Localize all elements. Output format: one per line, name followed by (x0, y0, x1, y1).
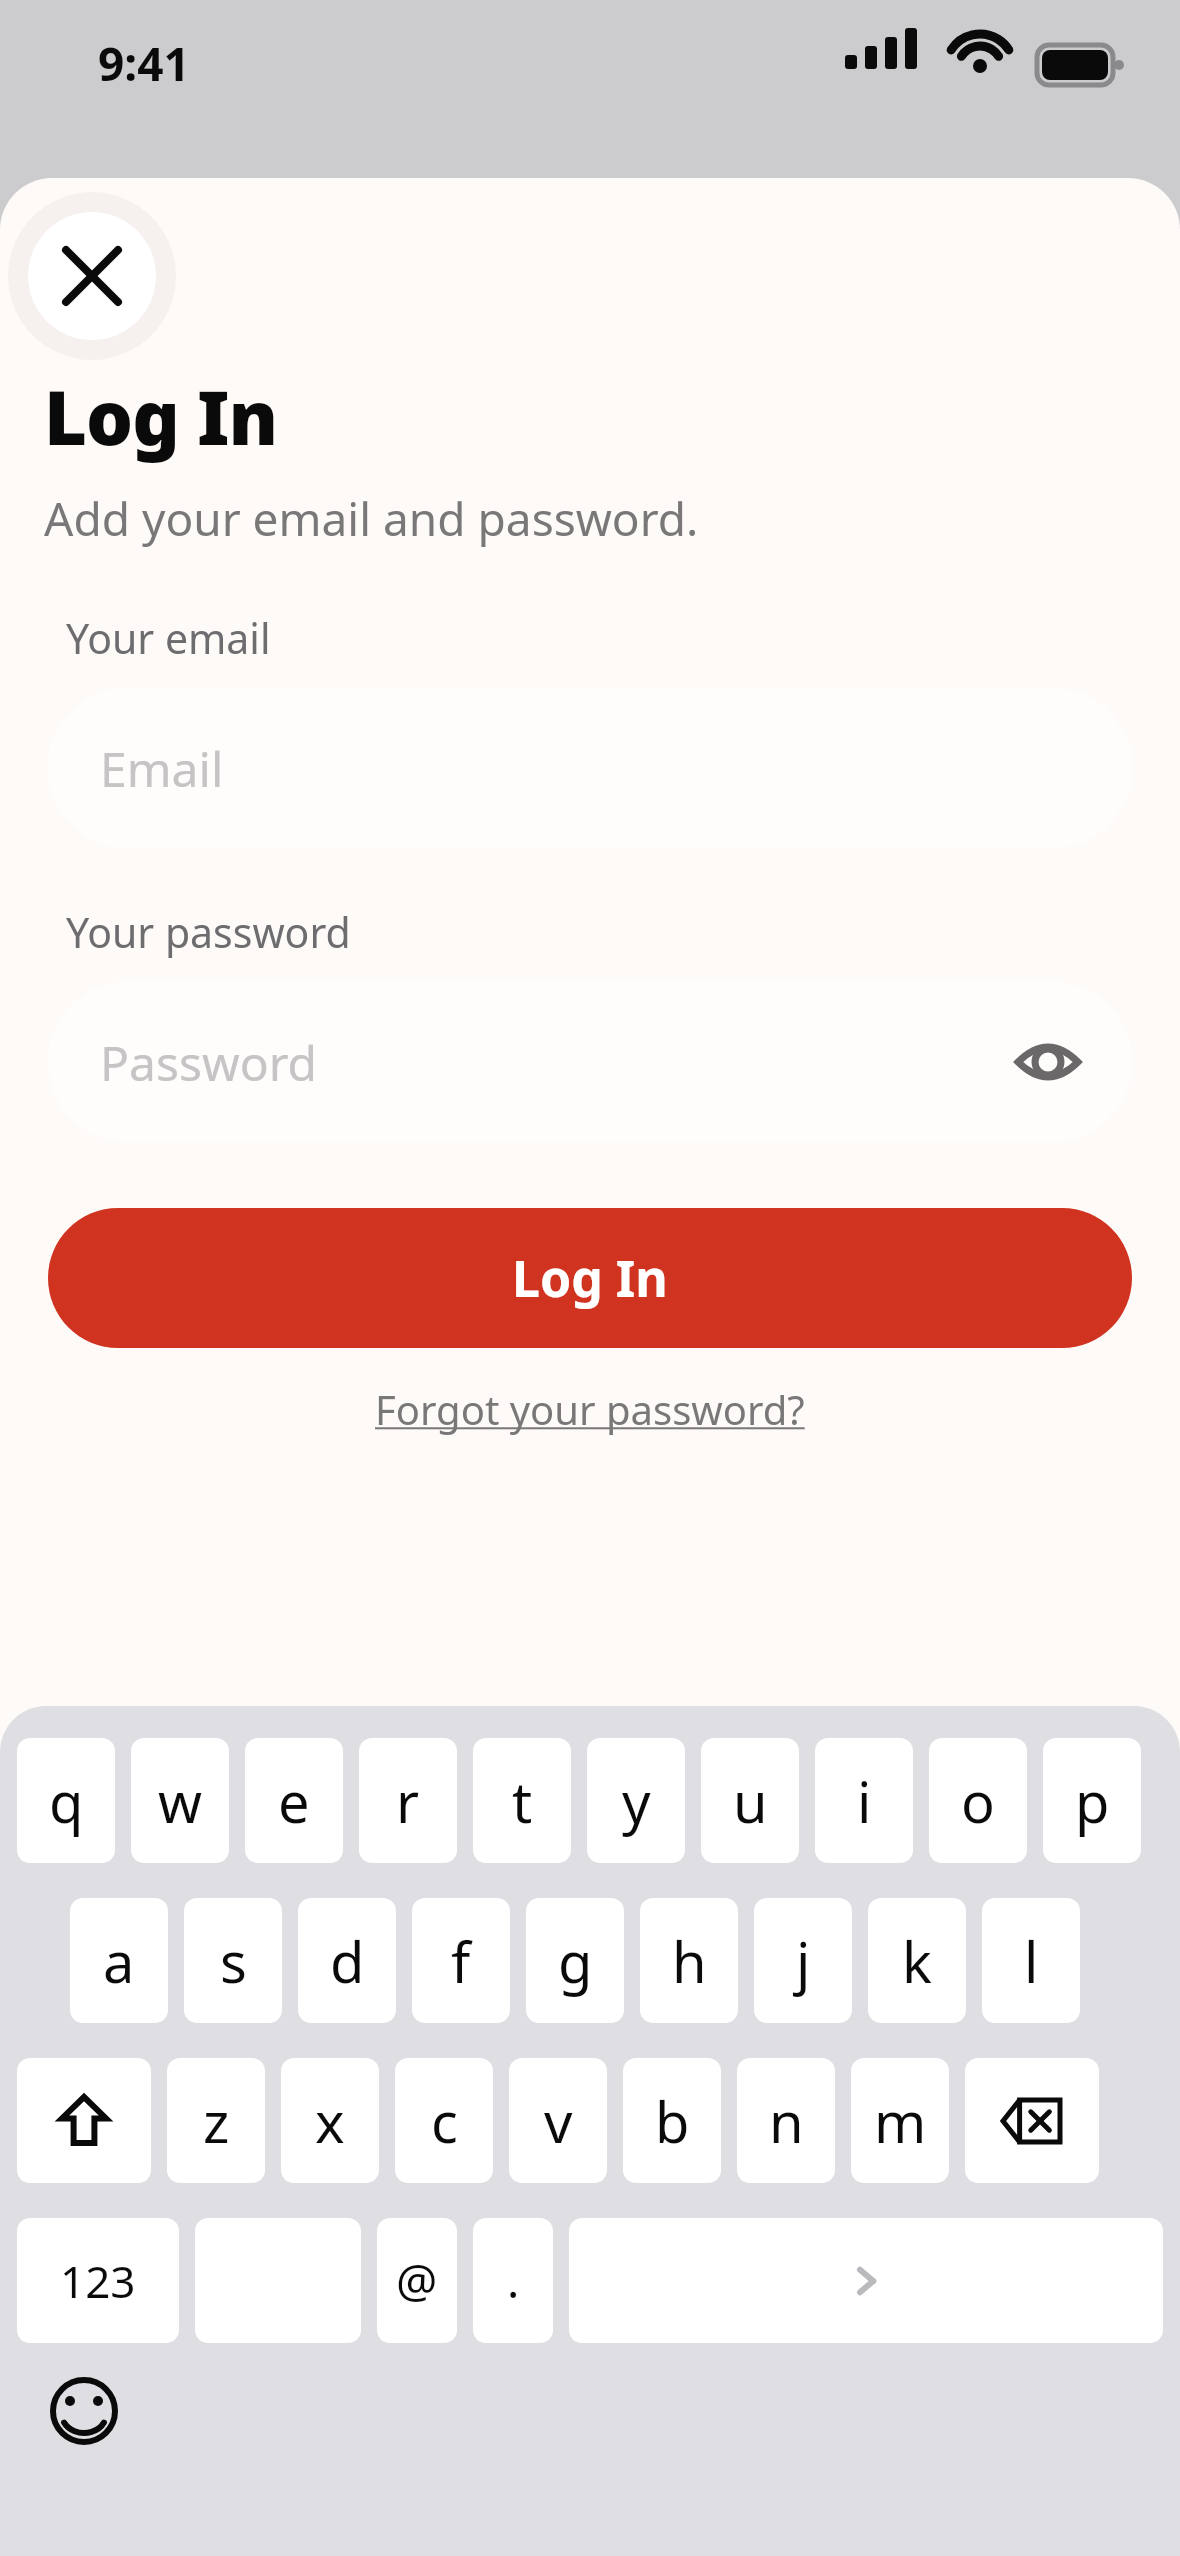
staticText: @ (396, 2249, 438, 2312)
button[interactable]: c (395, 2058, 493, 2183)
button[interactable]: @ (377, 2218, 457, 2343)
button[interactable]: n (737, 2058, 835, 2183)
staticText: Your password (66, 904, 351, 960)
button[interactable]: a (70, 1898, 168, 2023)
staticText: l (1024, 1923, 1039, 1999)
button[interactable]: Email (48, 688, 1132, 848)
button[interactable]: Show password (1012, 1026, 1084, 1098)
button[interactable]: Log In (48, 1208, 1132, 1348)
button[interactable]: Forgot your password? (363, 1370, 817, 1448)
staticText: q (49, 1763, 84, 1839)
staticText: n (769, 2083, 804, 2159)
staticText: o (961, 1763, 995, 1839)
button[interactable]: d (298, 1898, 396, 2023)
button[interactable]: . (473, 2218, 553, 2343)
button[interactable]: q (17, 1738, 115, 1863)
staticText: Password (100, 1030, 1012, 1095)
button[interactable]: t (473, 1738, 571, 1863)
button[interactable]: f (412, 1898, 510, 2023)
button[interactable]: Backspace (965, 2058, 1099, 2183)
staticText: s (220, 1923, 247, 1999)
staticText: r (396, 1763, 420, 1839)
staticText: h (672, 1923, 707, 1999)
staticText: c (431, 2083, 458, 2159)
staticText: a (103, 1923, 135, 1999)
staticText: e (278, 1763, 310, 1839)
staticText: v (544, 2083, 573, 2159)
button[interactable]: 123 (17, 2218, 179, 2343)
staticText: Log In (512, 1244, 668, 1312)
button[interactable]: e (245, 1738, 343, 1863)
staticText: x (315, 2083, 345, 2159)
button[interactable]: v (509, 2058, 607, 2183)
button[interactable]: l (982, 1898, 1080, 2023)
button[interactable]: x (281, 2058, 379, 2183)
staticText: f (451, 1923, 471, 1999)
button[interactable]: o (929, 1738, 1027, 1863)
button[interactable]: Shift (17, 2058, 151, 2183)
button[interactable]: u (701, 1738, 799, 1863)
staticText: p (1075, 1763, 1110, 1839)
button[interactable]: w (131, 1738, 229, 1863)
staticText: g (558, 1923, 593, 1999)
button[interactable]: i (815, 1738, 913, 1863)
button[interactable]: Emoji (46, 2373, 122, 2449)
button[interactable]: s (184, 1898, 282, 2023)
button[interactable]: Password (48, 982, 1132, 1142)
staticText: Your email (66, 610, 271, 666)
button[interactable]: Close (28, 212, 156, 340)
staticText: k (902, 1923, 932, 1999)
staticText: 123 (60, 2251, 136, 2311)
staticText: m (874, 2083, 927, 2159)
button[interactable]: m (851, 2058, 949, 2183)
staticText: b (655, 2083, 690, 2159)
button[interactable]: Go (569, 2218, 1163, 2343)
staticText: . (507, 2249, 520, 2312)
staticText: w (158, 1763, 203, 1839)
staticText: y (622, 1763, 651, 1839)
staticText: j (796, 1923, 811, 1999)
button[interactable]: y (587, 1738, 685, 1863)
button[interactable]: z (167, 2058, 265, 2183)
staticText: Log In (44, 366, 278, 467)
button[interactable]: h (640, 1898, 738, 2023)
staticText: Email (100, 736, 1084, 801)
staticText: Add your email and password. (44, 487, 699, 550)
staticText: z (203, 2083, 230, 2159)
button[interactable]: k (868, 1898, 966, 2023)
staticText: Forgot your password? (375, 1382, 805, 1436)
button[interactable]: g (526, 1898, 624, 2023)
staticText: u (733, 1763, 768, 1839)
button[interactable]: p (1043, 1738, 1141, 1863)
button[interactable]: j (754, 1898, 852, 2023)
staticText: 9:41 (98, 32, 190, 95)
staticText: d (330, 1923, 365, 1999)
button[interactable]: b (623, 2058, 721, 2183)
staticText: t (512, 1763, 533, 1839)
button[interactable]: r (359, 1738, 457, 1863)
staticText: i (857, 1763, 872, 1839)
